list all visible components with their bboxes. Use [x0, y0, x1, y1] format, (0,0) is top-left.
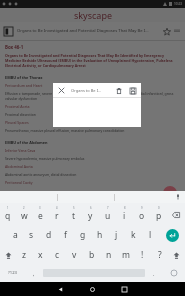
- staticText: 6: [90, 206, 92, 210]
- button[interactable]: n: [100, 245, 117, 265]
- button[interactable]: b: [83, 245, 100, 265]
- staticText: k: [131, 229, 136, 241]
- button[interactable]: 9: [133, 205, 150, 225]
- button[interactable]: 7: [99, 205, 116, 225]
- staticText: .: [153, 270, 155, 277]
- staticText: 5: [73, 206, 75, 210]
- staticText: s: [29, 229, 34, 241]
- button[interactable]: d: [40, 225, 57, 245]
- button[interactable]: 2: [16, 205, 32, 225]
- staticText: !: [141, 249, 144, 261]
- button[interactable]: h: [91, 225, 108, 245]
- button[interactable]: .: [145, 265, 163, 281]
- button[interactable]: 4: [48, 205, 65, 225]
- button[interactable]: Recents: [108, 282, 140, 296]
- staticText: skyscape: [74, 9, 112, 21]
- button[interactable]: !: [134, 245, 151, 265]
- button[interactable]: s: [23, 225, 40, 245]
- button[interactable]: x: [32, 245, 49, 265]
- button[interactable]: Shift: [168, 245, 185, 265]
- button[interactable]: g: [74, 225, 91, 245]
- staticText: h: [97, 229, 103, 241]
- staticText: t: [72, 210, 76, 222]
- button[interactable]: a: [7, 225, 23, 245]
- button[interactable]: Add note: [163, 186, 177, 200]
- staticText: Pneumothorax, massive pleural effusion, …: [5, 128, 125, 133]
- staticText: EMBU of the Thorax: [5, 75, 43, 80]
- staticText: Organs to Be Investigated and Potential …: [17, 28, 159, 34]
- staticText: 3: [39, 206, 41, 210]
- staticText: Abdominal aortic aneurysm, distal dissec…: [5, 172, 77, 177]
- button[interactable]: Enter: [166, 229, 179, 242]
- button[interactable]: v: [66, 245, 83, 265]
- staticText: o: [139, 210, 145, 222]
- button[interactable]: 6: [82, 205, 99, 225]
- button[interactable]: 3: [32, 205, 48, 225]
- staticText: n: [106, 249, 112, 261]
- staticText: Peritoneal Cavity: [5, 180, 33, 185]
- button[interactable]: ?123: [0, 265, 25, 281]
- button[interactable]: Save: [128, 86, 137, 95]
- button[interactable]: Organs to Be Investigated and Potential …: [0, 22, 185, 40]
- button[interactable]: Shift: [0, 245, 16, 265]
- button[interactable]: f: [57, 225, 74, 245]
- button[interactable]: 5: [65, 205, 82, 225]
- staticText: ?123: [8, 270, 18, 276]
- staticText: y: [88, 210, 93, 222]
- staticText: ?: [158, 249, 162, 261]
- staticText: v: [72, 249, 77, 261]
- staticText: u: [105, 210, 111, 222]
- button[interactable]: Delete: [114, 86, 123, 95]
- staticText: Box 46-1: [5, 44, 24, 50]
- staticText: EMBU of the Abdomen: [5, 140, 48, 145]
- button[interactable]: Emoji: [163, 265, 185, 281]
- staticText: Inferior Vena Cava: [5, 148, 36, 153]
- staticText: Pericardium and Heart: [5, 83, 43, 88]
- staticText: 4: [56, 206, 58, 210]
- staticText: Organs to Be I…: [71, 88, 114, 93]
- button[interactable]: ?: [151, 245, 168, 265]
- staticText: r: [55, 210, 59, 222]
- staticText: 7: [107, 206, 109, 210]
- staticText: Proximal dissection: [5, 112, 36, 117]
- staticText: ,: [33, 270, 35, 277]
- staticText: Abdominal Aorta: [5, 164, 33, 169]
- button[interactable]: j: [108, 225, 125, 245]
- staticText: z: [22, 249, 26, 261]
- button[interactable]: Voice input: [171, 191, 185, 203]
- button[interactable]: Back: [44, 282, 76, 296]
- staticText: w: [21, 210, 28, 222]
- staticText: 2: [23, 206, 25, 210]
- staticText: Proximal Aorta: [5, 104, 30, 109]
- staticText: q: [5, 210, 11, 222]
- button[interactable]: Favorite: [162, 27, 171, 36]
- button[interactable]: ,: [25, 265, 43, 281]
- staticText: 0: [158, 206, 160, 210]
- button[interactable]: k: [125, 225, 142, 245]
- button[interactable]: z: [16, 245, 32, 265]
- staticText: Severe hypovolemia, massive pulmonary em…: [5, 156, 85, 161]
- button[interactable]: l: [142, 225, 159, 245]
- button[interactable]: m: [117, 245, 134, 265]
- button[interactable]: 1: [0, 205, 16, 225]
- staticText: g: [80, 229, 86, 241]
- staticText: 9: [141, 206, 143, 210]
- staticText: 8: [124, 206, 126, 210]
- button[interactable]: Close: [57, 86, 65, 94]
- staticText: AAA: [174, 29, 181, 33]
- staticText: 1: [7, 206, 9, 210]
- staticText: i: [123, 210, 126, 222]
- button[interactable]: Backspace: [167, 205, 185, 225]
- staticText: Effusion ± tamponade, severe left ventri…: [5, 91, 180, 101]
- button[interactable]: 8: [116, 205, 133, 225]
- button[interactable]: c: [49, 245, 66, 265]
- staticText: a: [13, 229, 18, 241]
- button[interactable]: Home: [76, 282, 108, 296]
- staticText: 10:23: [174, 2, 183, 6]
- button[interactable]: 0: [150, 205, 167, 225]
